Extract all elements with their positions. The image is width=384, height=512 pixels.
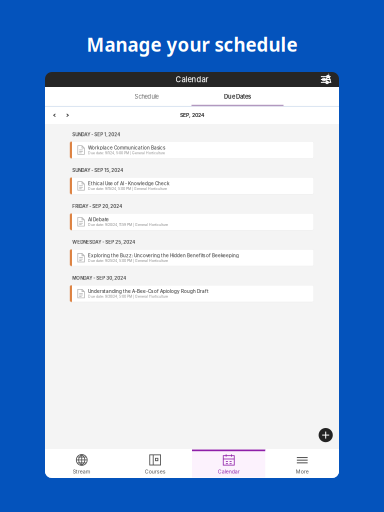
- button[interactable]: Previous month: [48, 108, 61, 122]
- staticText: Due date: 9/1/24, 5:00 PM | General Hort…: [88, 151, 165, 155]
- staticText: FRIDAY - SEP 20, 2024: [72, 203, 122, 209]
- button[interactable]: Courses: [118, 449, 192, 477]
- staticText: WEDNESDAY - SEP 25, 2024: [72, 239, 135, 245]
- button[interactable]: Add: [319, 428, 333, 442]
- staticText: Manage your schedule: [86, 32, 297, 57]
- button[interactable]: Stream: [45, 449, 118, 477]
- staticText: SUNDAY - SEP 15, 2024: [72, 168, 123, 173]
- staticText: Ethical Use of AI - Knowledge Check: [88, 181, 170, 186]
- staticText: Calendar: [218, 468, 240, 475]
- button[interactable]: Filter: [321, 75, 339, 84]
- button[interactable]: AI Debate: [70, 213, 314, 230]
- staticText: Due date: 9/25/24, 5:00 PM | General Hor…: [88, 258, 168, 263]
- staticText: Due date: 9/20/24, 11:59 PM | General Ho…: [88, 223, 168, 227]
- button[interactable]: Workplace Communication Basics: [70, 141, 314, 158]
- staticText: SEP, 2024: [180, 112, 204, 118]
- staticText: MONDAY - SEP 30, 2024: [72, 275, 126, 281]
- staticText: AI Debate: [88, 217, 109, 222]
- staticText: Due date: 9/15/24, 5:00 PM | General Hor…: [88, 187, 167, 191]
- button[interactable]: Ethical Use of AI - Knowledge Check: [70, 177, 314, 194]
- staticText: More: [296, 468, 309, 475]
- staticText: Due Dates: [224, 93, 251, 100]
- staticText: Workplace Communication Basics: [88, 145, 165, 151]
- button[interactable]: Schedule: [101, 87, 192, 106]
- staticText: Stream: [73, 468, 91, 475]
- button[interactable]: Due Dates: [192, 87, 283, 106]
- staticText: Due date: 9/30/24, 5:00 PM | General Hor…: [88, 294, 168, 299]
- staticText: Schedule: [134, 93, 158, 100]
- button[interactable]: Understanding the A-Bee-Cs of Apiology R…: [70, 285, 314, 302]
- button[interactable]: More: [265, 449, 339, 477]
- staticText: Understanding the A-Bee-Cs of Apiology R…: [88, 289, 209, 294]
- button[interactable]: Next month: [61, 108, 74, 122]
- button[interactable]: Calendar: [192, 449, 265, 477]
- staticText: Exploring the Buzz: Uncovering the Hidde…: [88, 253, 239, 258]
- button[interactable]: Exploring the Buzz: Uncovering the Hidde…: [70, 249, 314, 266]
- staticText: Courses: [145, 468, 166, 475]
- staticText: Calendar: [175, 75, 208, 84]
- staticText: SUNDAY - SEP 1, 2024: [72, 132, 120, 137]
